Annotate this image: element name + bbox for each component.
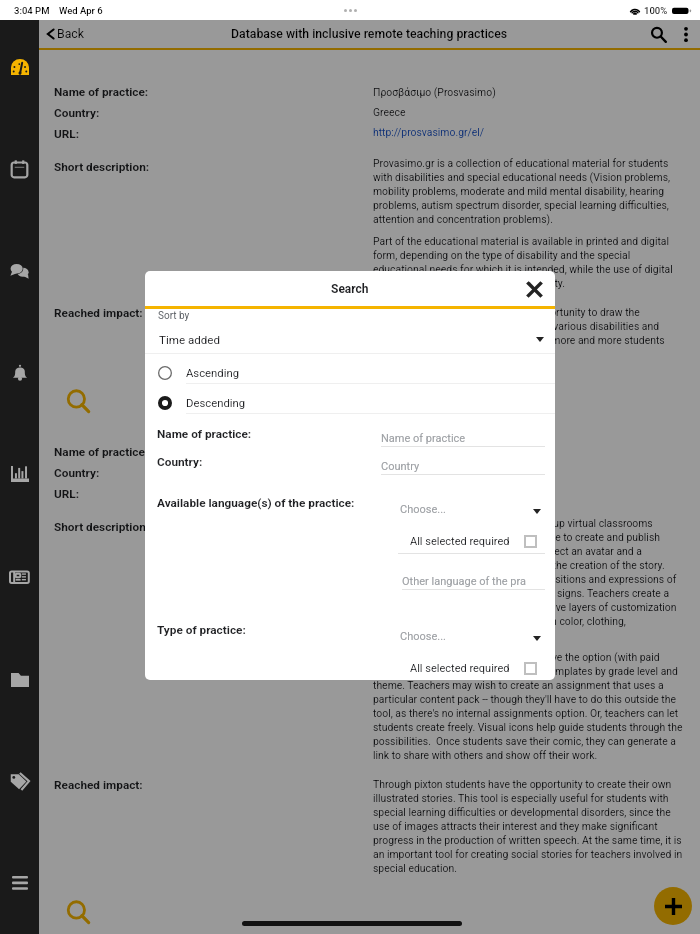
button[interactable]: Other language of the pra	[402, 575, 545, 595]
button[interactable]: Choose...	[400, 630, 545, 647]
staticText: Wed Apr 6	[59, 5, 103, 16]
staticText: Reached impact:	[54, 306, 143, 320]
staticText: Part of the educational material is avai…	[373, 235, 683, 290]
staticText: Database with inclusive remote teaching …	[231, 27, 508, 41]
staticText: Type of practice:	[157, 623, 246, 637]
staticText: http://prosvasimo.gr/el/	[373, 126, 485, 138]
staticText: Name of practice:	[157, 427, 252, 441]
button[interactable]: Close	[521, 276, 547, 302]
button[interactable]: Back	[45, 20, 85, 48]
staticText: URL:	[54, 127, 80, 141]
button[interactable]: All selected required	[398, 533, 545, 550]
staticText: Name of practice	[381, 432, 466, 445]
staticText: Time added	[159, 333, 220, 347]
button[interactable]: All selected required	[398, 660, 545, 677]
staticText: 100%	[644, 5, 668, 16]
staticText: Country:	[54, 466, 100, 480]
button[interactable]: Ascending	[145, 358, 555, 388]
button[interactable]: Add	[654, 887, 692, 925]
button[interactable]: Descending	[145, 388, 555, 418]
button[interactable]: Menu	[0, 865, 39, 899]
staticText: 3:04 PM	[14, 5, 50, 16]
staticText: Canada	[373, 466, 409, 478]
staticText: Reached impact:	[54, 778, 143, 792]
staticText: Through pixton students have the opportu…	[373, 778, 683, 875]
staticText: URL:	[54, 487, 80, 501]
button[interactable]: Files	[0, 662, 39, 696]
staticText: Short description:	[54, 520, 150, 534]
staticText: Name of practice:	[54, 85, 149, 99]
staticText: Choose...	[400, 630, 446, 643]
staticText: Pixton offers teachers the ability to se…	[373, 517, 683, 642]
staticText: Search	[331, 282, 369, 296]
button[interactable]: Search	[644, 20, 672, 48]
button[interactable]: Statistics	[0, 457, 39, 491]
staticText: Country	[381, 460, 420, 473]
button[interactable]: Messages	[0, 254, 39, 288]
staticText: Country:	[157, 455, 203, 469]
staticText: All selected required	[410, 535, 510, 548]
staticText: Name of practice:	[54, 445, 149, 459]
button[interactable]: Time added	[145, 328, 555, 353]
staticText: Sort by	[158, 310, 190, 322]
staticText: Within the Pixton platform, teachers hav…	[373, 651, 683, 762]
staticText: Ascending	[186, 367, 240, 380]
staticText: Descending	[186, 397, 246, 410]
button[interactable]: More options	[672, 20, 700, 48]
button[interactable]: Tags	[0, 764, 39, 798]
staticText: All selected required	[410, 662, 510, 675]
staticText: Country:	[54, 106, 100, 120]
button[interactable]: Name of practice	[381, 432, 545, 452]
button[interactable]: Notifications	[0, 356, 39, 390]
staticText: Choose...	[400, 503, 446, 516]
staticText: Pixton	[373, 446, 403, 458]
button[interactable]: Choose...	[400, 503, 545, 520]
button[interactable]: Calendar	[0, 152, 39, 186]
button[interactable]: Dashboard	[0, 50, 39, 84]
button[interactable]: Country	[381, 460, 545, 480]
staticText: Provasimo.gr is a collection of educatio…	[373, 157, 683, 226]
staticText: Greece	[373, 106, 406, 118]
staticText: Προσβάσιμο (Prosvasimo)	[373, 86, 496, 98]
staticText: Short description:	[54, 160, 150, 174]
button[interactable]: News	[0, 560, 39, 594]
staticText: Students with disabilities have the oppo…	[373, 306, 683, 361]
staticText: Back	[57, 27, 85, 41]
staticText: Other language of the pra	[402, 575, 526, 588]
staticText: Available language(s) of the practice:	[157, 496, 355, 510]
